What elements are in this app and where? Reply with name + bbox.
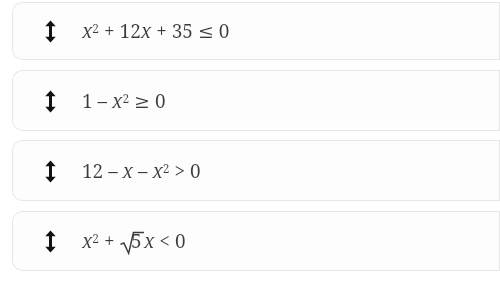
staticText: x2 + 12x + 35 ≤ 0 [82, 18, 230, 44]
button[interactable]: Reorder item [12, 211, 500, 271]
other: Reorder item [44, 19, 57, 44]
staticText: x2 + [82, 228, 120, 254]
button[interactable]: Reorder item [12, 70, 500, 131]
other: Reorder item [44, 89, 57, 114]
staticText: 12 – x – x2 > 0 [82, 158, 201, 184]
staticText: 5 [131, 228, 142, 254]
button[interactable]: Reorder item [12, 140, 500, 201]
staticText: 1 – x2 ≥ 0 [82, 88, 166, 114]
other: Reorder item [44, 229, 57, 254]
staticText: x < 0 [144, 228, 186, 254]
button[interactable]: Reorder item [12, 2, 500, 60]
other: Reorder item [44, 159, 57, 184]
